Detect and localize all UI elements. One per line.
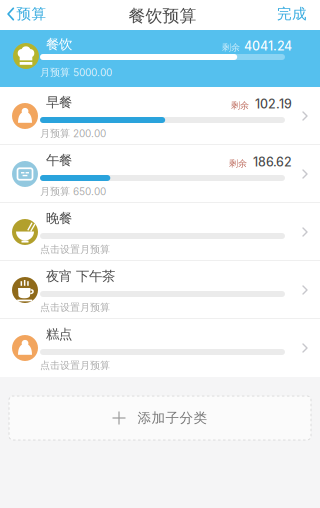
staticText: 102.19 [255,96,292,111]
staticText: 月预算 650.00 [40,185,106,198]
staticText: 点击设置月预算 [40,301,110,314]
button[interactable]: 午餐 [0,145,320,203]
button[interactable]: 糕点 [0,319,320,377]
staticText: 完成 [277,5,307,23]
button[interactable]: 添加子分类 [9,396,311,440]
button[interactable]: 餐饮 [0,30,320,87]
staticText: 186.62 [253,154,292,169]
staticText: 剩余 [229,158,247,169]
staticText: 夜宵 下午茶 [46,268,115,285]
staticText: 点击设置月预算 [40,243,110,256]
staticText: 月预算 200.00 [40,127,106,140]
staticText: 午餐 [46,152,72,169]
button[interactable]: 晚餐 [0,203,320,261]
button[interactable]: 夜宵 下午茶 [0,261,320,319]
staticText: 添加子分类 [137,409,207,426]
staticText: 糕点 [46,326,72,343]
staticText: 早餐 [46,94,72,111]
staticText: 4041.24 [244,38,292,53]
staticText: 月预算 5000.00 [40,66,112,79]
staticText: 点击设置月预算 [40,359,110,372]
staticText: 预算 [16,5,46,23]
button[interactable]: 早餐 [0,87,320,145]
staticText: 餐饮预算 [128,5,196,27]
staticText: 餐饮 [46,36,72,53]
staticText: 晚餐 [46,210,72,227]
staticText: 剩余 [231,100,249,111]
staticText: 剩余 [222,42,240,53]
button[interactable]: 返回预算 [0,5,46,23]
button[interactable]: 完成 [277,5,320,23]
